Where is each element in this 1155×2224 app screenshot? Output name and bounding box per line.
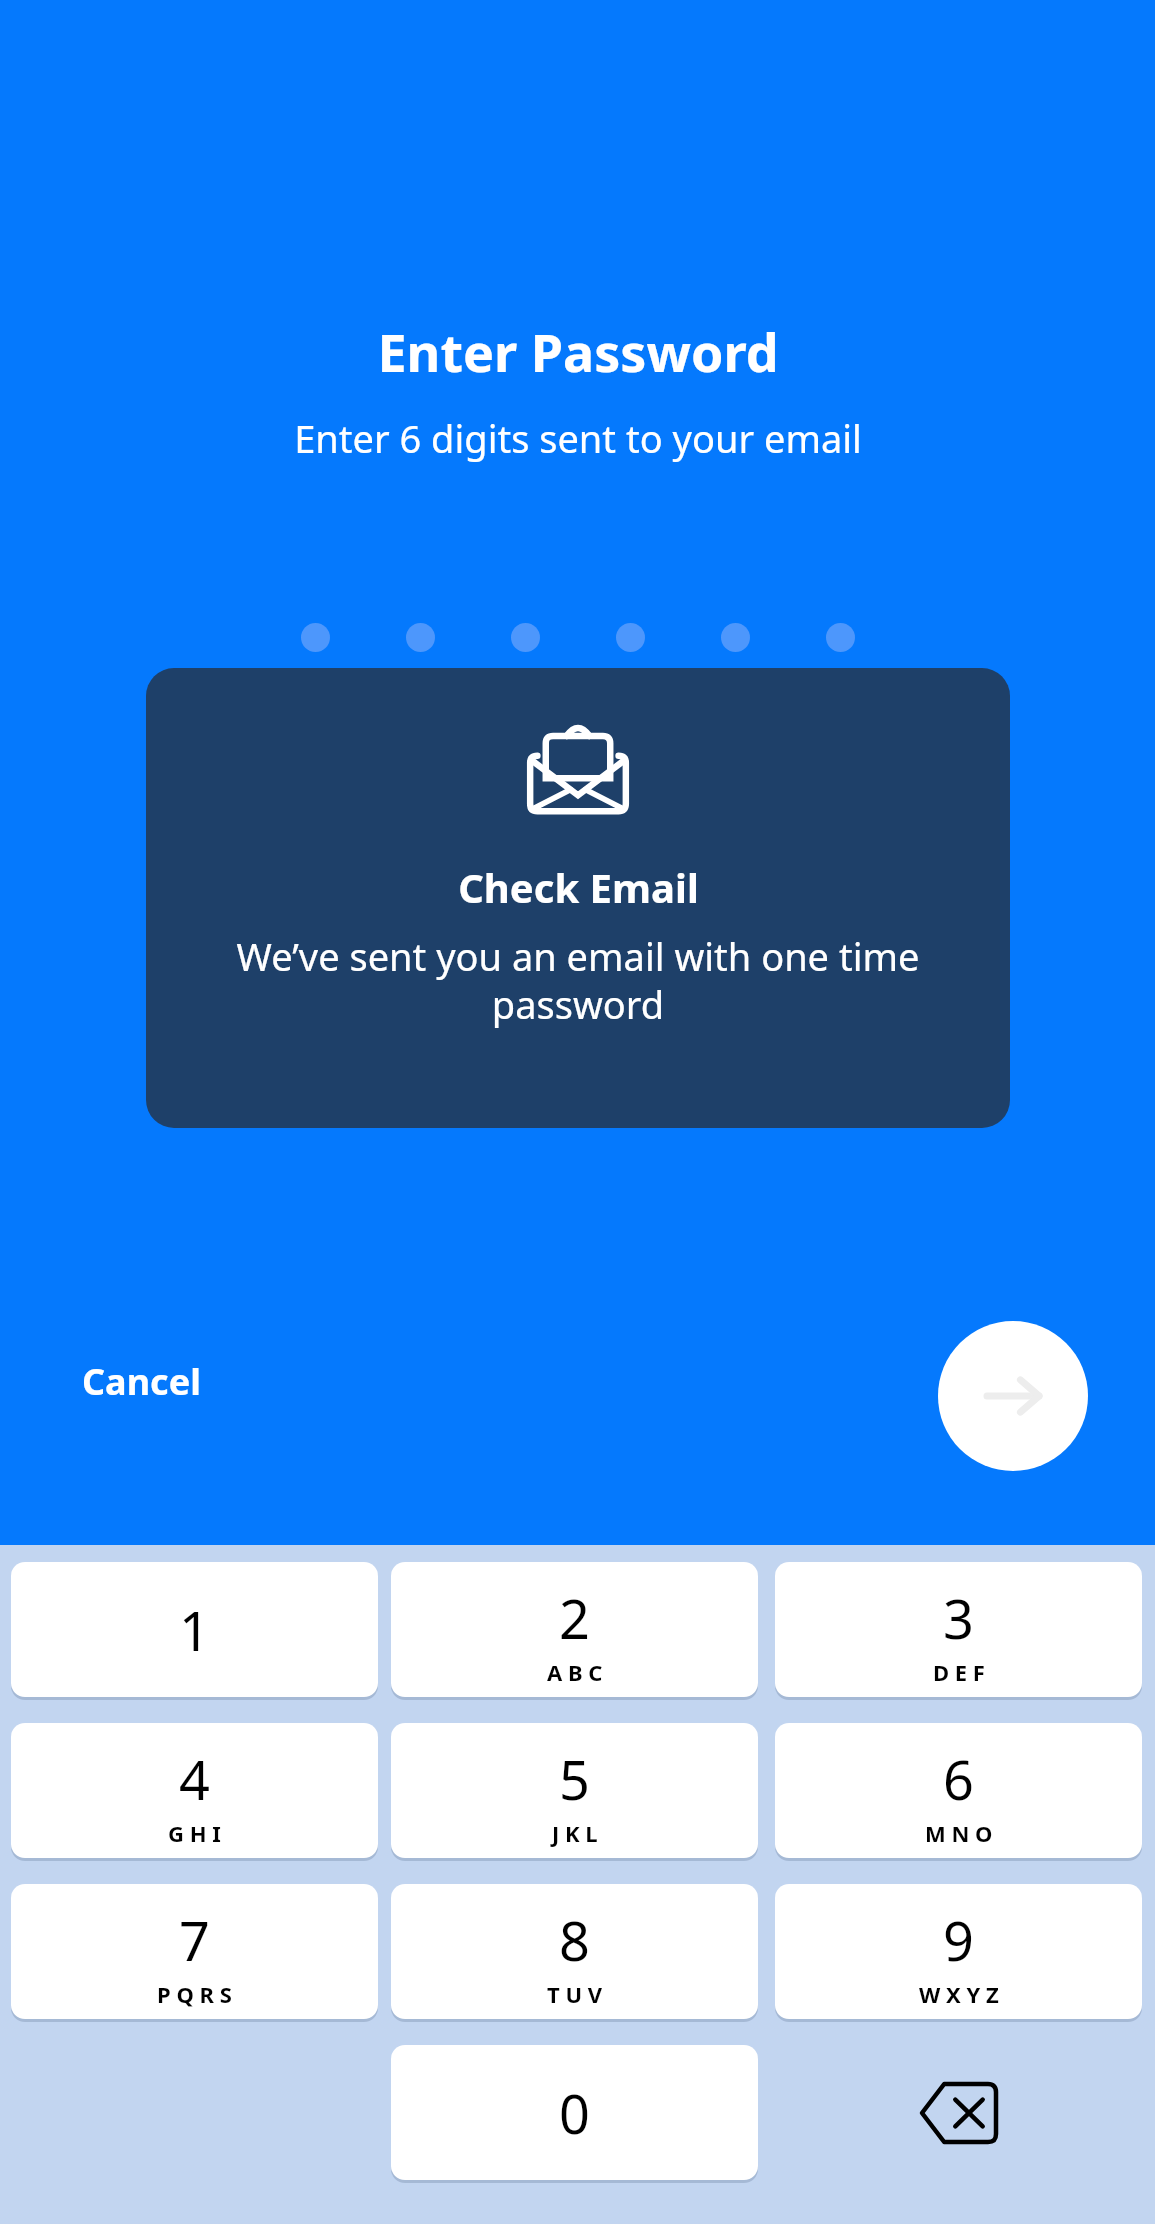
- button[interactable]: 8: [391, 1884, 758, 2019]
- staticText: Check Email: [458, 860, 699, 914]
- staticText: 7: [179, 1903, 210, 1977]
- staticText: D E F: [933, 1657, 985, 1687]
- button[interactable]: Cancel: [60, 1343, 223, 1420]
- button[interactable]: 4: [11, 1723, 378, 1858]
- button[interactable]: Continue: [938, 1321, 1088, 1471]
- staticText: 2: [559, 1581, 590, 1655]
- staticText: 4: [179, 1742, 210, 1816]
- staticText: T U V: [547, 1979, 603, 2009]
- staticText: 1: [179, 1593, 210, 1667]
- button[interactable]: Check Email: [146, 668, 1010, 1128]
- staticText: 5: [559, 1742, 590, 1816]
- staticText: 3: [943, 1581, 974, 1655]
- button[interactable]: 9: [775, 1884, 1142, 2019]
- staticText: We’ve sent you an email with one time pa…: [213, 930, 943, 1030]
- button[interactable]: 6: [775, 1723, 1142, 1858]
- staticText: Enter Password: [377, 316, 779, 387]
- staticText: Enter 6 digits sent to your email: [294, 412, 862, 464]
- button[interactable]: 2: [391, 1562, 758, 1697]
- staticText: 8: [559, 1903, 590, 1977]
- button[interactable]: 7: [11, 1884, 378, 2019]
- button[interactable]: 3: [775, 1562, 1142, 1697]
- staticText: M N O: [925, 1818, 993, 1848]
- button[interactable]: 1: [11, 1562, 378, 1697]
- staticText: G H I: [168, 1818, 221, 1848]
- staticText: W X Y Z: [919, 1979, 999, 2009]
- button[interactable]: 5: [391, 1723, 758, 1858]
- staticText: Cancel: [82, 1357, 201, 1406]
- staticText: 0: [559, 2076, 590, 2150]
- button[interactable]: Backspace: [775, 2045, 1142, 2180]
- staticText: 6: [943, 1742, 974, 1816]
- staticText: P Q R S: [157, 1979, 232, 2009]
- button[interactable]: 0: [391, 2045, 758, 2180]
- staticText: 9: [943, 1903, 974, 1977]
- staticText: J K L: [552, 1818, 598, 1848]
- staticText: A B C: [547, 1657, 603, 1687]
